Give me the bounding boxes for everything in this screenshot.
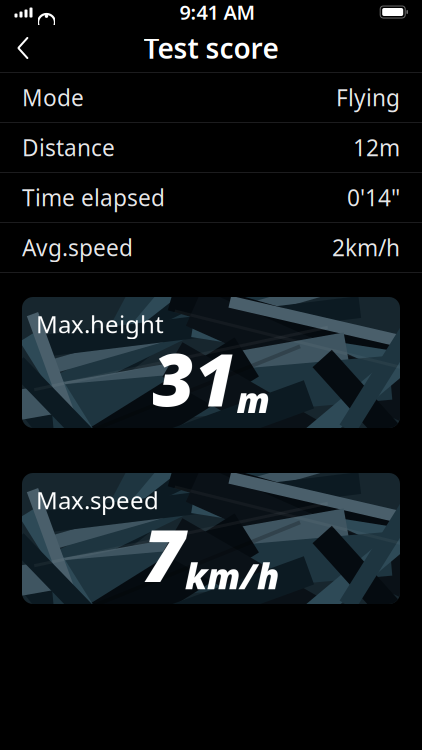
staticText: Distance [22,132,115,162]
staticText: Test score [143,29,278,67]
button[interactable]: Max.height [22,297,400,428]
staticText: 12m [353,132,400,162]
staticText: Time elapsed [22,182,165,212]
staticText: 0'14" [347,182,400,212]
staticText: 31 [152,331,236,426]
staticText: m [236,375,269,423]
staticText: 7 [143,507,185,602]
button[interactable]: Max.speed [22,473,400,604]
staticText: 9:41 AM [180,0,256,25]
staticText: 2km/h [332,232,400,262]
staticText: Flying [336,82,400,112]
staticText: Max.height [36,308,164,340]
staticText: km/h [185,551,279,599]
staticText: Max.speed [36,484,159,516]
staticText: Avg.speed [22,232,133,262]
staticText: Mode [22,82,84,112]
button[interactable]: Back [0,26,46,70]
